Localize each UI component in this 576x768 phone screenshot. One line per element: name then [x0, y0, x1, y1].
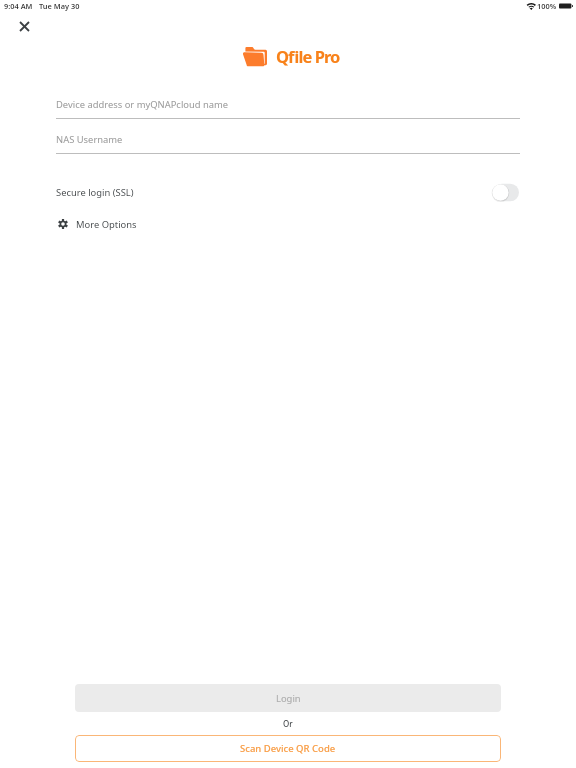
button[interactable]: Device address or myQNAPcloud name: [56, 97, 520, 119]
staticText: Login: [276, 692, 301, 705]
button[interactable]: More Options: [56, 213, 137, 235]
staticText: Device address or myQNAPcloud name: [56, 98, 229, 111]
staticText: Tue May 30: [39, 1, 80, 11]
staticText: More Options: [76, 218, 137, 231]
staticText: Qfile Pro: [276, 45, 340, 67]
staticText: Or: [283, 718, 293, 729]
button[interactable]: Login: [75, 684, 501, 712]
staticText: 9:04 AM: [4, 1, 33, 11]
staticText: NAS Username: [56, 133, 123, 146]
button[interactable]: Secure login toggle: [492, 183, 520, 202]
staticText: 100%: [537, 1, 557, 11]
button[interactable]: Scan Device QR Code: [75, 735, 501, 762]
staticText: Secure login (SSL): [56, 186, 134, 199]
button[interactable]: NAS Username: [56, 132, 520, 154]
staticText: Scan Device QR Code: [240, 742, 336, 755]
button[interactable]: Close: [10, 12, 38, 40]
